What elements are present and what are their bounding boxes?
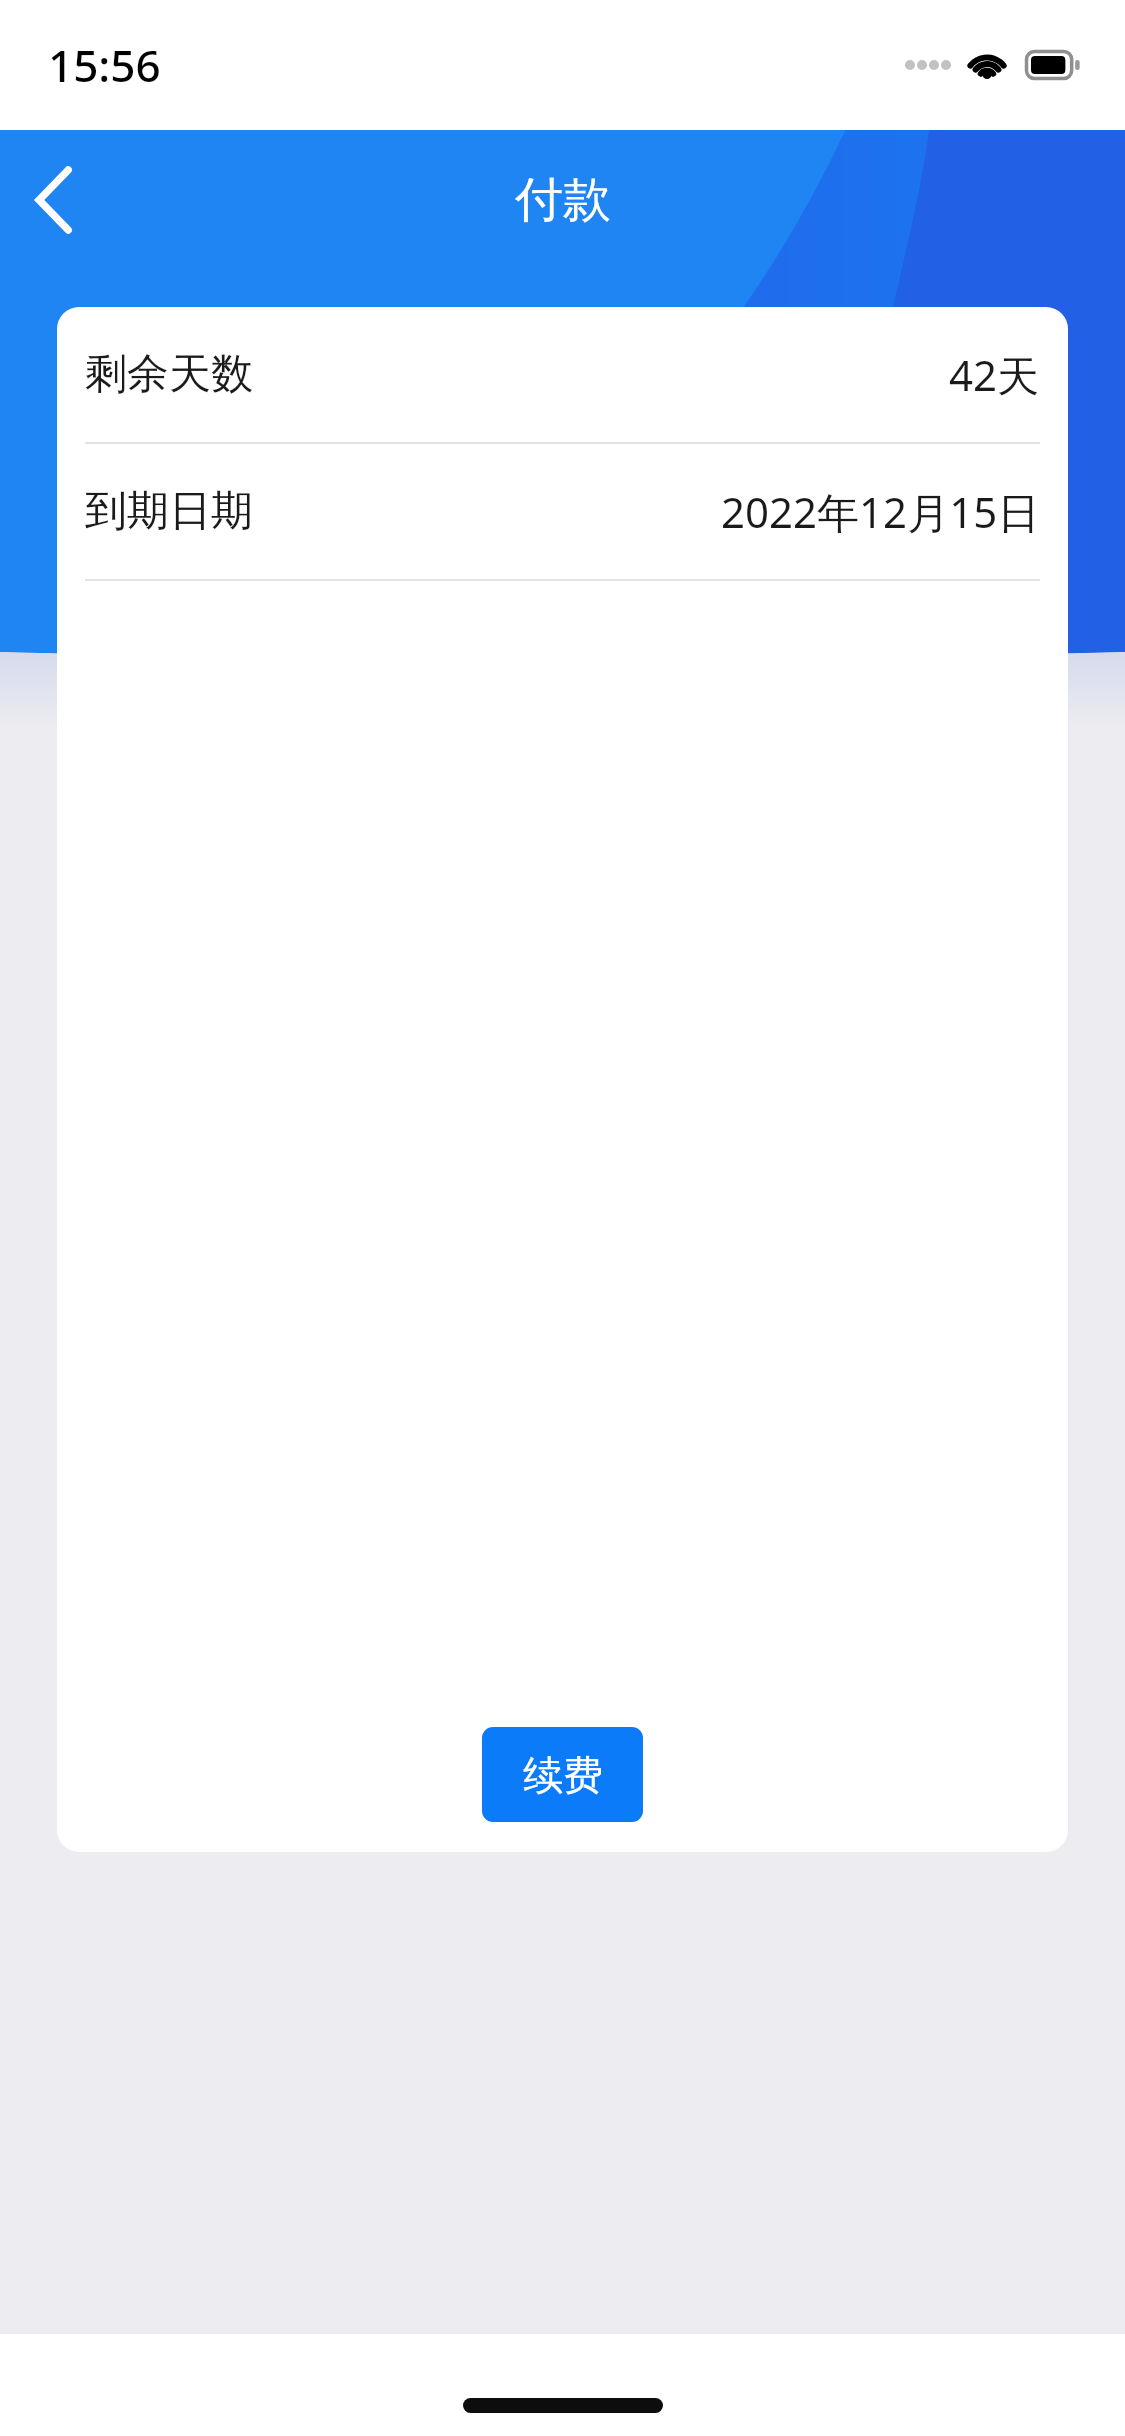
staticText: 15:56 [48, 35, 161, 95]
staticText: 42天 [949, 346, 1040, 403]
staticText: 付款 [515, 170, 611, 230]
staticText: 剩余天数 [85, 348, 253, 401]
button[interactable]: 续费 [482, 1727, 643, 1822]
staticText: 到期日期 [85, 485, 253, 538]
button[interactable]: Back [0, 145, 110, 255]
button[interactable]: 到期日期 [57, 444, 1068, 581]
staticText: 续费 [523, 1750, 603, 1800]
staticText: 2022年12月15日 [721, 483, 1040, 540]
button[interactable]: 剩余天数 [57, 307, 1068, 444]
